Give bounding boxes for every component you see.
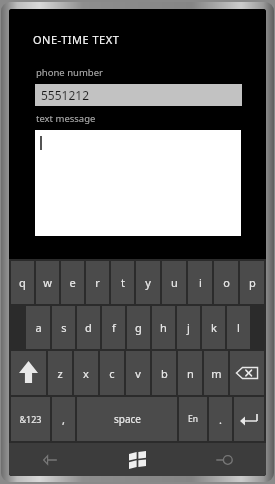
button[interactable]: f (102, 306, 125, 349)
staticText: g (135, 320, 142, 335)
button[interactable]: u (162, 261, 186, 304)
button[interactable]: Backspace (230, 351, 264, 395)
staticText: j (187, 320, 190, 335)
button[interactable]: j (177, 306, 200, 349)
button[interactable]: En (179, 397, 207, 441)
button[interactable]: , (52, 397, 75, 441)
staticText: h (160, 320, 167, 335)
staticText: , (62, 412, 65, 427)
button[interactable]: c (100, 351, 124, 395)
staticText: . (219, 412, 222, 427)
button[interactable]: Shift (11, 351, 46, 395)
staticText: q (19, 275, 26, 290)
staticText: z (57, 366, 63, 381)
button[interactable]: l (227, 306, 250, 349)
button[interactable]: x (74, 351, 98, 395)
staticText: space (114, 412, 141, 426)
staticText: b (161, 366, 168, 381)
button[interactable]: space (77, 397, 177, 441)
button[interactable]: o (214, 261, 238, 304)
button[interactable]: v (126, 351, 150, 395)
button[interactable]: t (111, 261, 134, 304)
button[interactable]: . (209, 397, 232, 441)
staticText: p (249, 275, 256, 290)
staticText: x (83, 366, 89, 381)
button[interactable]: Start (94, 443, 180, 476)
button[interactable]: g (127, 306, 150, 349)
staticText: y (145, 275, 151, 290)
button[interactable]: m (204, 351, 228, 395)
staticText: v (135, 366, 141, 381)
staticText: phone number (36, 66, 103, 79)
staticText: a (35, 320, 42, 335)
staticText: t (121, 275, 125, 290)
button[interactable]: h (152, 306, 175, 349)
button[interactable]: Back (9, 443, 94, 476)
button[interactable]: Search (180, 443, 266, 476)
button[interactable]: r (86, 261, 109, 304)
button[interactable]: Enter (234, 397, 264, 441)
staticText: En (188, 413, 198, 425)
staticText: text message (36, 112, 96, 125)
staticText: o (223, 275, 230, 290)
staticText: f (112, 320, 116, 335)
button[interactable]: s (52, 306, 75, 349)
button[interactable]: k (202, 306, 225, 349)
staticText: c (109, 366, 115, 381)
staticText: m (211, 366, 222, 381)
button[interactable]: 5551212 (35, 84, 242, 106)
staticText: ONE-TIME TEXT (33, 32, 120, 47)
button[interactable]: i (188, 261, 212, 304)
button[interactable]: y (136, 261, 160, 304)
staticText: l (237, 320, 240, 335)
button[interactable]: w (36, 261, 59, 304)
staticText: 5551212 (41, 87, 90, 103)
button[interactable]: b (152, 351, 176, 395)
staticText: n (187, 366, 194, 381)
staticText: i (199, 275, 202, 290)
staticText: s (61, 320, 67, 335)
button[interactable]: q (11, 261, 34, 304)
button[interactable]: a (26, 306, 50, 349)
staticText: k (211, 320, 217, 335)
staticText: d (85, 320, 92, 335)
staticText: u (171, 275, 178, 290)
staticText: r (95, 275, 100, 290)
button[interactable]: p (240, 261, 264, 304)
button[interactable]: z (48, 351, 72, 395)
button[interactable]: n (178, 351, 202, 395)
button[interactable] (35, 130, 241, 236)
button[interactable]: &123 (11, 397, 50, 441)
button[interactable]: d (77, 306, 100, 349)
staticText: e (69, 275, 76, 290)
staticText: &123 (19, 413, 42, 425)
button[interactable]: e (61, 261, 84, 304)
staticText: w (43, 275, 52, 290)
